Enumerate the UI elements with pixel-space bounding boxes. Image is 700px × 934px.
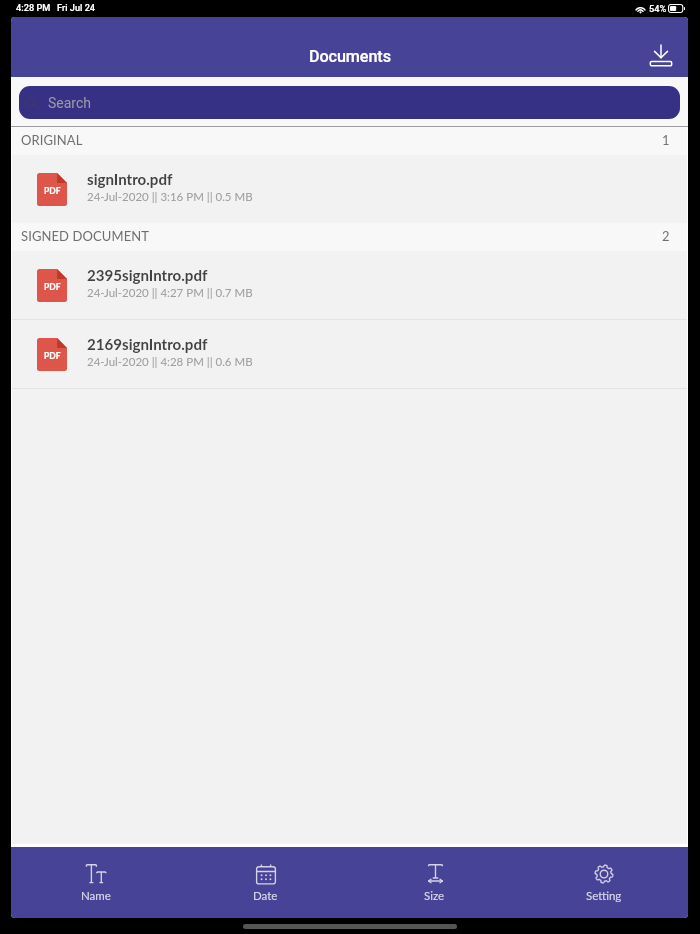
staticText: 1 bbox=[662, 132, 670, 148]
staticText: 24-Jul-2020 || 4:28 PM || 0.6 MB bbox=[87, 355, 253, 369]
staticText: 4:28 PM bbox=[16, 2, 51, 13]
button[interactable]: Search bbox=[19, 86, 680, 119]
staticText: Size bbox=[424, 889, 445, 903]
staticText: 24-Jul-2020 || 4:27 PM || 0.7 MB bbox=[87, 286, 253, 300]
staticText: SIGNED DOCUMENT bbox=[21, 228, 150, 244]
staticText: 24-Jul-2020 || 3:16 PM || 0.5 MB bbox=[87, 190, 253, 204]
staticText: 2395signIntro.pdf bbox=[87, 266, 208, 284]
button[interactable]: Date bbox=[181, 847, 350, 918]
staticText: Date bbox=[253, 889, 278, 903]
staticText: 2 bbox=[662, 228, 670, 244]
staticText: Setting bbox=[586, 889, 622, 903]
button[interactable]: PDF bbox=[11, 155, 688, 223]
staticText: signIntro.pdf bbox=[87, 170, 173, 188]
staticText: PDF bbox=[44, 186, 61, 196]
button[interactable]: Setting bbox=[519, 847, 688, 918]
button[interactable]: Size bbox=[350, 847, 519, 918]
staticText: ORIGINAL bbox=[21, 132, 83, 148]
staticText: Documents bbox=[309, 47, 391, 66]
staticText: 54% bbox=[649, 3, 667, 14]
staticText: Fri Jul 24 bbox=[57, 2, 96, 13]
staticText: 2169signIntro.pdf bbox=[87, 335, 208, 353]
button[interactable]: PDF bbox=[11, 251, 688, 319]
button[interactable]: Download bbox=[639, 33, 683, 77]
staticText: Search bbox=[48, 95, 92, 111]
button[interactable]: PDF bbox=[11, 320, 688, 388]
staticText: PDF bbox=[44, 282, 61, 292]
staticText: PDF bbox=[44, 351, 61, 361]
button[interactable]: Name bbox=[11, 847, 181, 918]
staticText: Name bbox=[81, 889, 111, 903]
